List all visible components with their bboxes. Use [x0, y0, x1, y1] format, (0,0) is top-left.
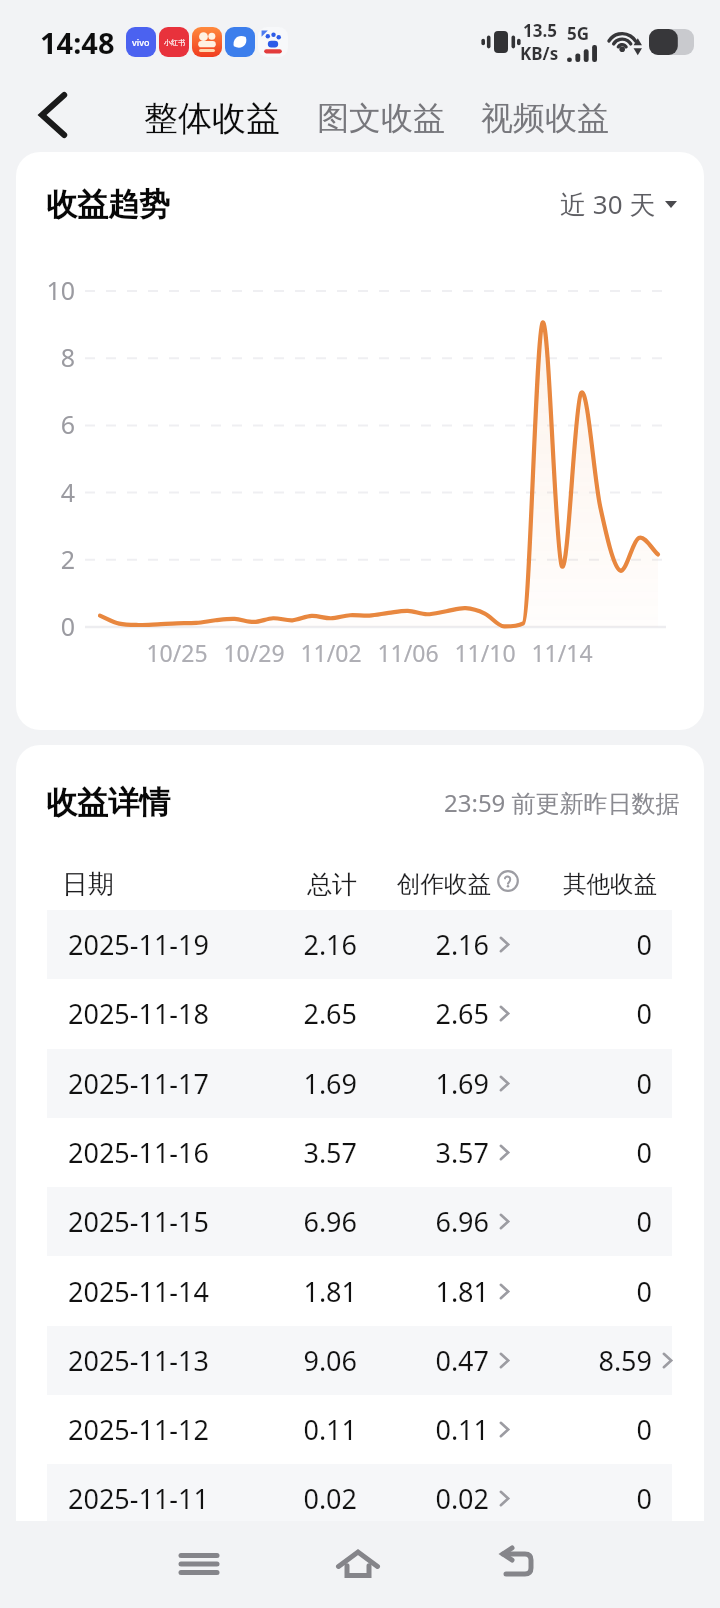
staticText: 3.57: [197, 1134, 357, 1171]
staticText: 8: [16, 340, 75, 374]
staticText: 0: [492, 1411, 652, 1448]
staticText: 0: [492, 926, 652, 963]
staticText: 11/14: [502, 637, 622, 668]
staticText: 2025-11-12: [68, 1411, 209, 1448]
staticText: 2.16: [329, 926, 489, 963]
button[interactable]: 2025-11-19: [16, 910, 704, 979]
staticText: 0.11: [329, 1411, 489, 1448]
button[interactable]: 2025-11-16: [16, 1118, 704, 1187]
staticText: 4: [16, 475, 75, 509]
staticText: 总计: [197, 869, 357, 900]
button[interactable]: 视频收益: [475, 90, 615, 146]
button[interactable]: Back: [22, 84, 84, 146]
staticText: 10/25: [117, 637, 237, 668]
staticText: 1.81: [197, 1273, 357, 1310]
staticText: 小红书: [164, 38, 185, 47]
button[interactable]: 整体收益: [138, 89, 286, 148]
staticText: 23:59 前更新昨日数据: [444, 786, 680, 819]
staticText: 0: [492, 995, 652, 1032]
staticText: 11/06: [348, 637, 468, 668]
staticText: 1.81: [329, 1273, 489, 1310]
staticText: 创作收益: [397, 869, 491, 899]
staticText: 2025-11-18: [68, 995, 209, 1032]
button[interactable]: 2025-11-18: [16, 979, 704, 1048]
staticText: 0: [492, 1134, 652, 1171]
staticText: 视频收益: [481, 98, 609, 138]
staticText: 日期: [62, 868, 114, 901]
staticText: 整体收益: [144, 97, 280, 140]
staticText: 1.69: [197, 1065, 357, 1102]
staticText: 11/02: [271, 637, 391, 668]
staticText: 10: [16, 273, 75, 307]
button[interactable]: 2025-11-15: [16, 1187, 704, 1256]
staticText: 0: [492, 1480, 652, 1517]
staticText: 2025-11-13: [68, 1342, 209, 1379]
staticText: 2.16: [197, 926, 357, 963]
staticText: 14:48: [40, 23, 115, 62]
button[interactable]: Recents: [163, 1528, 235, 1600]
staticText: 2025-11-14: [68, 1273, 209, 1310]
staticText: 6.96: [329, 1203, 489, 1240]
button[interactable]: Help: [497, 870, 519, 892]
staticText: 13.5: [523, 19, 557, 42]
staticText: 10/29: [194, 637, 314, 668]
button[interactable]: 近 30 天: [554, 180, 683, 228]
staticText: 0.11: [197, 1411, 357, 1448]
staticText: 2025-11-19: [68, 926, 209, 963]
staticText: 0.02: [329, 1480, 489, 1517]
staticText: 2025-11-17: [68, 1065, 209, 1102]
staticText: 收益详情: [46, 783, 170, 822]
staticText: KB/s: [520, 42, 559, 65]
button[interactable]: Back: [481, 1528, 553, 1600]
button[interactable]: 2025-11-17: [16, 1049, 704, 1118]
staticText: 6.96: [197, 1203, 357, 1240]
button[interactable]: Home: [322, 1528, 394, 1600]
staticText: 6: [16, 407, 75, 441]
staticText: 其他收益: [563, 869, 657, 899]
staticText: 图文收益: [317, 98, 445, 138]
staticText: 5G: [567, 22, 590, 45]
staticText: 0: [492, 1065, 652, 1102]
staticText: 2.65: [329, 995, 489, 1032]
staticText: 2025-11-11: [68, 1480, 209, 1517]
staticText: 0.47: [329, 1342, 489, 1379]
staticText: 3.57: [329, 1134, 489, 1171]
staticText: 2025-11-15: [68, 1203, 209, 1240]
button[interactable]: 2025-11-12: [16, 1395, 704, 1464]
staticText: 2.65: [197, 995, 357, 1032]
staticText: 1.69: [329, 1065, 489, 1102]
staticText: 0.02: [197, 1480, 357, 1517]
button[interactable]: 图文收益: [311, 90, 451, 146]
button[interactable]: 2025-11-13: [16, 1326, 704, 1395]
button[interactable]: 2025-11-14: [16, 1257, 704, 1326]
staticText: 8.59: [492, 1342, 652, 1379]
button[interactable]: 2025-11-11: [16, 1464, 704, 1521]
staticText: 收益趋势: [46, 185, 170, 224]
staticText: 9.06: [197, 1342, 357, 1379]
staticText: 2: [16, 542, 75, 576]
staticText: 0: [16, 609, 75, 643]
staticText: 11/10: [425, 637, 545, 668]
staticText: 0: [492, 1273, 652, 1310]
staticText: vivo: [132, 36, 150, 48]
staticText: 近 30 天: [560, 186, 656, 222]
staticText: 2025-11-16: [68, 1134, 209, 1171]
staticText: 0: [492, 1203, 652, 1240]
